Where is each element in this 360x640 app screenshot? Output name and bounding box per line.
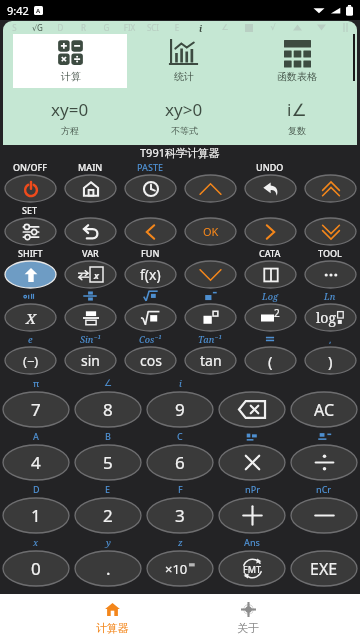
button[interactable]: Ans [219,551,285,586]
button[interactable]: 2 [75,498,141,533]
button[interactable]: 计算 [13,34,127,88]
staticText: √ [261,23,285,32]
staticText: 2 [103,504,113,527]
staticText: ( [268,351,273,371]
button[interactable]: PASTE [125,175,176,202]
button[interactable]: FRAC [65,304,116,331]
button[interactable]: nCr [291,498,357,533]
button[interactable]: SHIFT [5,261,56,288]
staticText: 函数表格 [277,70,317,83]
staticText: Ln [324,290,336,302]
staticText: ∠ [104,378,113,388]
staticText: OK [203,224,219,239]
button[interactable]: nPr [219,498,285,533]
staticText: 关于 [237,621,259,635]
button[interactable]: CATA [245,261,296,288]
staticText: i∠ [287,98,307,121]
staticText: 5 [103,451,113,474]
staticText: x [94,269,99,281]
staticText: 计算器 [96,621,129,635]
staticText: √G [32,22,43,33]
button[interactable]: ON/OFF [5,175,56,202]
button[interactable]: 4 [3,445,69,480]
staticText: 复数 [288,125,306,136]
button[interactable]: UNDO [65,218,116,245]
button[interactable]: 计算器 [45,594,180,640]
button[interactable]: AC [291,392,357,427]
staticText: FIX [118,22,141,33]
staticText: sin [81,351,100,370]
button[interactable]: 8 [75,392,141,427]
button[interactable]: xy>0 [127,88,240,145]
button[interactable]: SQRT [125,304,176,331]
button[interactable]: 3 [147,498,213,533]
button[interactable]: MAIN [65,175,116,202]
button[interactable]: UNDO [245,175,296,202]
staticText: x [33,536,39,548]
staticText: nPr [245,483,260,495]
button[interactable]: 0 [3,551,69,586]
staticText: log [316,308,336,327]
staticText: VAR [82,247,99,259]
staticText: 6 [175,451,185,474]
staticText: UNDO [256,161,284,173]
staticText: Cos⁻¹ [139,333,162,345]
button[interactable]: CHEVUP [185,175,236,202]
button[interactable]: i∠ [240,88,353,145]
button[interactable]: DEL [219,392,285,427]
button[interactable]: DIVIDE [291,445,357,480]
button[interactable]: VAR [65,261,116,288]
button[interactable]: TIMES [219,445,285,480]
staticText: 不等式 [171,125,198,136]
button[interactable]: ( [245,347,296,374]
button[interactable]: cos [125,347,176,374]
button[interactable]: EXE [291,551,357,586]
staticText: Tan⁻¹ [198,333,222,345]
button[interactable]: Ln [305,304,356,331]
button[interactable]: LEFT [125,218,176,245]
button[interactable]: 1 [3,498,69,533]
button[interactable]: SET [5,218,56,245]
button[interactable]: Log [245,304,296,331]
staticText: 9 [175,398,185,421]
staticText: ) [328,351,333,371]
button[interactable]: z [147,551,213,586]
staticText: PASTE [137,161,163,173]
button[interactable]: 5 [75,445,141,480]
button[interactable]: 统计 [127,34,240,88]
button[interactable]: CHEVDOWN2 [305,218,356,245]
staticText: Sin⁻¹ [80,333,101,345]
staticText: nCr [316,483,332,495]
button[interactable]: X [5,304,56,331]
staticText: 1 [31,504,41,527]
button[interactable]: CHEVDOWN [185,261,236,288]
staticText: S [3,22,26,33]
button[interactable]: f(x) [125,261,176,288]
staticText: i [199,22,203,34]
staticText: 4 [31,451,41,474]
staticText: ∠ [213,23,237,32]
button[interactable]: sin [65,347,116,374]
button[interactable]: CHEVUP2 [305,175,356,202]
button[interactable]: xy=0 [13,88,127,145]
button[interactable]: 关于 [180,594,315,640]
staticText: T991科学计算器 [140,145,220,159]
staticText: π [33,377,40,389]
button[interactable]: 函数表格 [240,34,353,88]
staticText: X [26,308,36,328]
button[interactable]: 7 [3,392,69,427]
staticText: A [36,7,41,15]
button[interactable]: 9 [147,392,213,427]
button[interactable]: 6 [147,445,213,480]
button[interactable]: ) [305,347,356,374]
button[interactable]: RIGHT [245,218,296,245]
button[interactable]: TOOL [305,261,356,288]
staticText: D [49,22,72,33]
button[interactable]: tan [185,347,236,374]
button[interactable]: (−) [5,347,56,374]
staticText: E [165,22,189,33]
button[interactable]: POW [185,304,236,331]
button[interactable]: OK [185,218,236,245]
button[interactable]: . [75,551,141,586]
staticText: Ans [244,536,260,548]
